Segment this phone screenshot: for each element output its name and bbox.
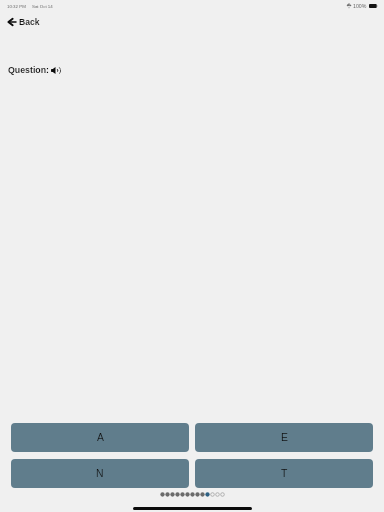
staticText: Sat Oct 14 xyxy=(32,4,53,9)
staticText: E xyxy=(281,432,288,444)
button[interactable]: A xyxy=(11,423,189,452)
button[interactable]: E xyxy=(195,423,373,452)
staticText: Back xyxy=(19,17,40,27)
button[interactable]: N xyxy=(11,459,189,488)
staticText: 100% xyxy=(353,3,367,9)
staticText: N xyxy=(96,468,104,480)
staticText: 10:32 PM xyxy=(7,4,26,9)
button[interactable]: T xyxy=(195,459,373,488)
staticText: A xyxy=(97,432,104,444)
staticText: T xyxy=(281,468,288,480)
button[interactable]: Play question audio xyxy=(51,66,61,75)
button[interactable]: Back xyxy=(4,15,44,29)
staticText: Question: xyxy=(8,65,50,75)
